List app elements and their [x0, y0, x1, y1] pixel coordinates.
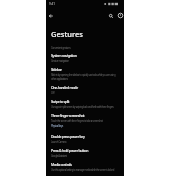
button[interactable]: System navigation [46, 51, 124, 65]
button[interactable]: Three finger screenshot [46, 111, 124, 123]
staticText: One-handed mode [51, 85, 78, 90]
staticText: Double press power key [51, 134, 85, 139]
staticText: Touch the screen with three fingers to t… [51, 119, 103, 123]
staticText: Gestures [51, 29, 83, 39]
staticText: Sidebar [51, 67, 62, 72]
button[interactable]: Swipe to split [46, 97, 124, 111]
staticText: Launch Camera [51, 140, 67, 144]
staticText: Press & hold power button [51, 148, 89, 153]
staticText: Use apps in split screen by swiping back… [51, 105, 114, 109]
staticText: Physical keys [51, 124, 63, 128]
staticText: System navigation [51, 53, 77, 58]
button[interactable]: Sidebar [46, 65, 124, 83]
staticText: Media controls [51, 162, 72, 167]
button[interactable]: Search [107, 12, 114, 19]
staticText: Use this optional setting to manage medi… [51, 168, 115, 172]
staticText: 9:41 [49, 2, 55, 6]
button[interactable]: One-handed mode [46, 83, 124, 97]
button[interactable]: Back [47, 12, 54, 19]
staticText: Three finger screenshot [51, 113, 85, 118]
button[interactable]: Account [117, 12, 124, 19]
staticText: Google Assistant [51, 154, 67, 158]
staticText: Slide in by opening the sidebar to quick… [51, 73, 116, 81]
staticText: Swipe to split [51, 99, 70, 104]
button[interactable]: Press & hold power button [46, 146, 124, 160]
staticText: Off [51, 91, 55, 95]
staticText: Gesture navigation [51, 59, 69, 63]
button[interactable]: Double press power key [46, 132, 124, 146]
button[interactable]: Media controls [46, 160, 124, 174]
staticText: Convenient gestures [51, 46, 71, 50]
